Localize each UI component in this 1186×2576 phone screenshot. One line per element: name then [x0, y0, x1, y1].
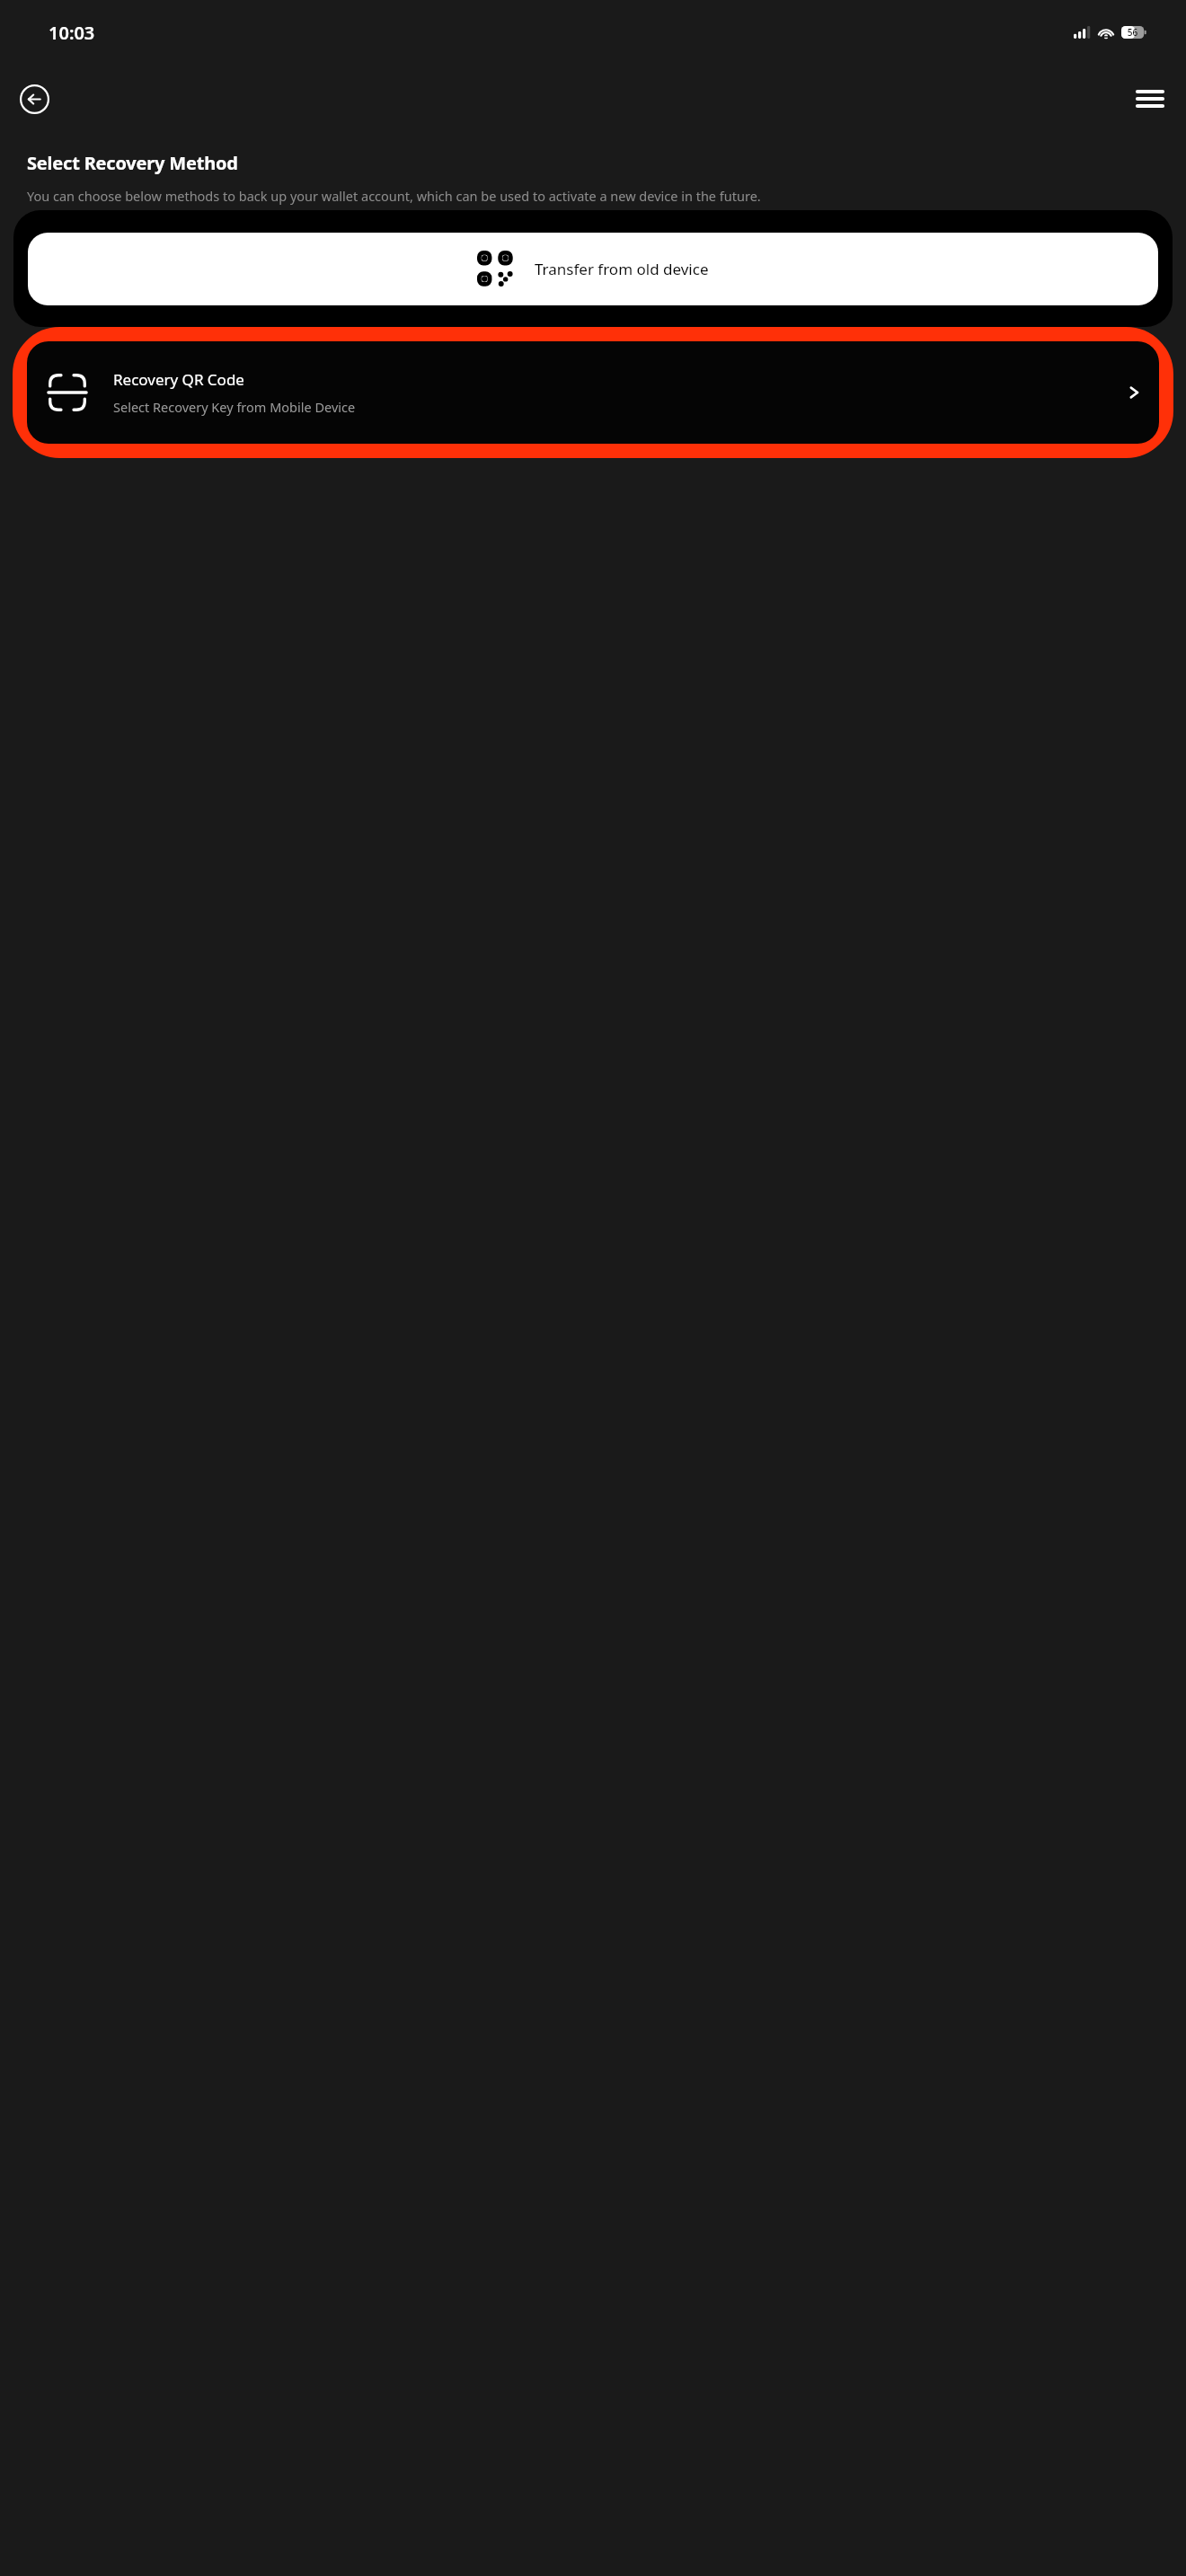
button[interactable]: Menu: [1125, 74, 1175, 124]
staticText: Select Recovery Key from Mobile Device: [113, 398, 356, 416]
staticText: 10:03: [49, 21, 95, 45]
staticText: Select Recovery Method: [27, 151, 238, 175]
button[interactable]: Back: [9, 74, 59, 124]
staticText: 56: [1121, 26, 1144, 39]
staticText: Transfer from old device: [535, 259, 709, 279]
staticText: Recovery QR Code: [113, 369, 244, 390]
button[interactable]: Recovery QR Code: [27, 341, 1159, 444]
button[interactable]: Transfer from old device: [13, 210, 1173, 327]
staticText: You can choose below methods to back up …: [27, 187, 761, 205]
